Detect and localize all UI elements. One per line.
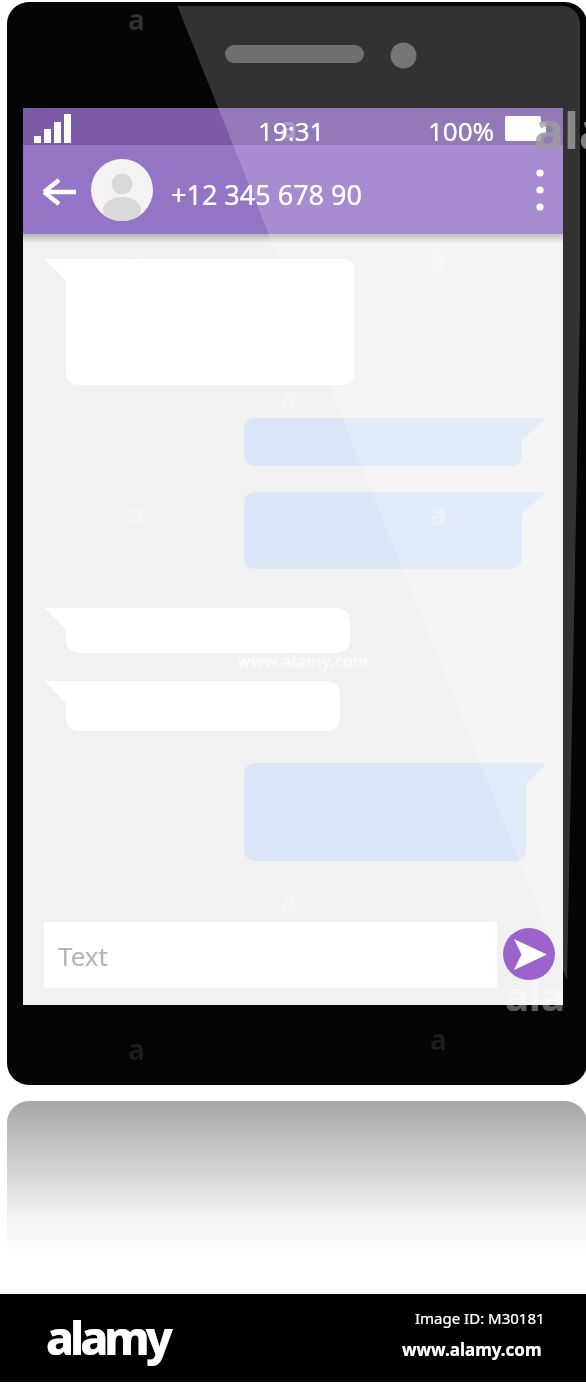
staticText: www.alamy.com: [237, 650, 369, 672]
button[interactable]: [44, 922, 497, 988]
staticText: a: [128, 240, 145, 278]
staticText: a: [430, 1020, 447, 1058]
staticText: a: [430, 0, 447, 38]
button[interactable]: [34, 175, 86, 211]
staticText: 100%: [428, 113, 495, 148]
staticText: a: [430, 495, 447, 533]
staticText: +12 345 678 90: [171, 176, 362, 213]
staticText: a: [280, 378, 297, 416]
staticText: a: [430, 240, 447, 278]
button[interactable]: [91, 159, 153, 221]
staticText: 19:31: [258, 113, 325, 148]
staticText: alamy: [46, 1306, 169, 1369]
staticText: Image ID: M30181: [415, 1308, 545, 1328]
button[interactable]: [503, 928, 555, 980]
staticText: ala: [505, 968, 565, 1022]
staticText: a: [280, 108, 297, 146]
staticText: ala: [534, 96, 586, 164]
staticText: a: [128, 1030, 145, 1068]
staticText: www.alamy.com: [402, 1338, 542, 1361]
staticText: Text: [58, 938, 108, 973]
staticText: a: [128, 0, 145, 38]
button[interactable]: [524, 163, 556, 219]
